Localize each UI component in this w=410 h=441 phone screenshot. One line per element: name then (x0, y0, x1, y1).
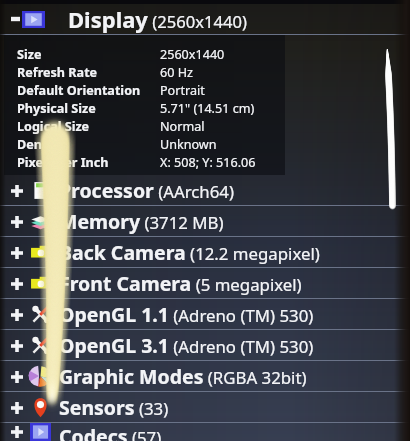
staticText: 2560x1440 (160, 46, 225, 63)
staticText: Refresh Rate (17, 64, 98, 81)
button[interactable]: Front Camera (5 megapixel) (0, 268, 410, 298)
button[interactable]: Codecs (57) (0, 423, 410, 441)
staticText: Unknown (160, 136, 217, 153)
staticText: 5.71" (14.51 cm) (160, 100, 255, 117)
staticText: X: 508; Y: 516.06 (160, 154, 256, 171)
staticText: OpenGL 1.1 (Adreno (TM) 530) (59, 301, 314, 328)
staticText: OpenGL 3.1 (Adreno (TM) 530) (59, 332, 314, 359)
button[interactable]: Graphic Modes (RGBA 32bit) (0, 361, 410, 391)
staticText: Density (17, 136, 65, 153)
staticText: Pixels Per Inch (17, 154, 109, 171)
staticText: Processor (AArch64) (59, 177, 234, 204)
button[interactable]: OpenGL 3.1 (Adreno (TM) 530) (0, 330, 410, 360)
staticText: Size (17, 46, 42, 63)
button[interactable]: Memory (3712 MB) (0, 206, 410, 236)
staticText: Front Camera (5 megapixel) (59, 270, 302, 297)
staticText: 60 Hz (160, 64, 193, 81)
staticText: Graphic Modes (RGBA 32bit) (59, 363, 307, 390)
staticText: Portrait (160, 82, 205, 99)
staticText: Memory (3712 MB) (59, 208, 224, 235)
button[interactable]: Sensors (33) (0, 392, 410, 422)
button[interactable]: OpenGL 1.1 (Adreno (TM) 530) (0, 299, 410, 329)
staticText: Back Camera (12.2 megapixel) (59, 239, 320, 266)
staticText: Physical Size (17, 100, 96, 117)
staticText: Logical Size (17, 118, 90, 135)
button[interactable]: Back Camera (12.2 megapixel) (0, 237, 410, 267)
staticText: Sensors (33) (59, 394, 169, 421)
staticText: Codecs (57) (59, 423, 162, 441)
button[interactable]: Processor (AArch64) (0, 175, 410, 205)
button[interactable]: Display (2560x1440) (0, 4, 410, 34)
staticText: Display (2560x1440) (68, 4, 247, 34)
staticText: Default Orientation (17, 82, 141, 99)
staticText: Normal (160, 118, 205, 135)
